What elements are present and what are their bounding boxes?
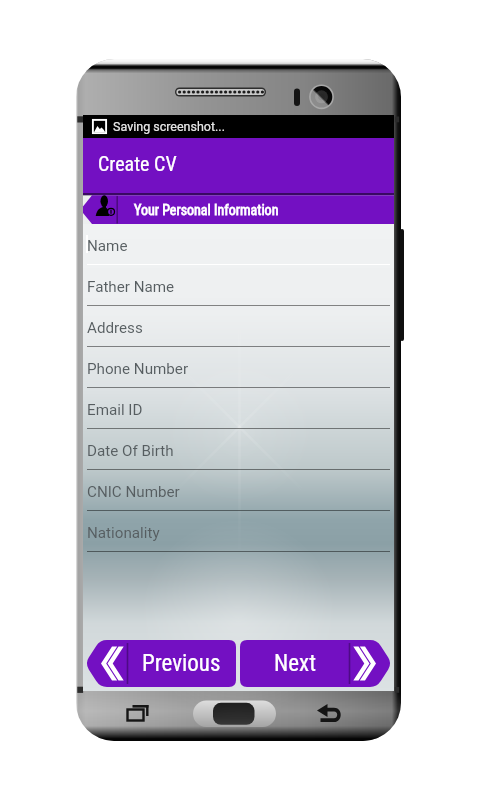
staticText: Date Of Birth — [87, 442, 174, 460]
button[interactable]: Date Of Birth — [83, 429, 394, 470]
staticText: Create CV — [98, 152, 177, 175]
button[interactable]: Name — [83, 224, 394, 265]
staticText: CNIC Number — [87, 483, 180, 501]
button[interactable]: Create CV — [83, 138, 394, 189]
staticText: Nationality — [87, 524, 160, 542]
button[interactable]: Father Name — [83, 265, 394, 306]
staticText: Email ID — [87, 401, 143, 419]
button[interactable]: Your Personal Information — [83, 189, 394, 224]
button[interactable]: Next — [240, 640, 392, 687]
staticText: Address — [87, 319, 143, 337]
staticText: Your Personal Information — [134, 202, 279, 218]
staticText: Father Name — [87, 278, 175, 296]
button[interactable]: Nationality — [83, 511, 394, 552]
staticText: Name — [87, 237, 128, 255]
button[interactable]: Address — [83, 306, 394, 347]
staticText: Saving screenshot... — [113, 119, 225, 134]
staticText: Next — [274, 650, 316, 677]
staticText: Previous — [142, 650, 221, 677]
staticText: Phone Number — [87, 360, 189, 378]
button[interactable]: CNIC Number — [83, 470, 394, 511]
button[interactable]: Email ID — [83, 388, 394, 429]
button[interactable]: Previous — [85, 640, 236, 687]
button[interactable]: Phone Number — [83, 347, 394, 388]
